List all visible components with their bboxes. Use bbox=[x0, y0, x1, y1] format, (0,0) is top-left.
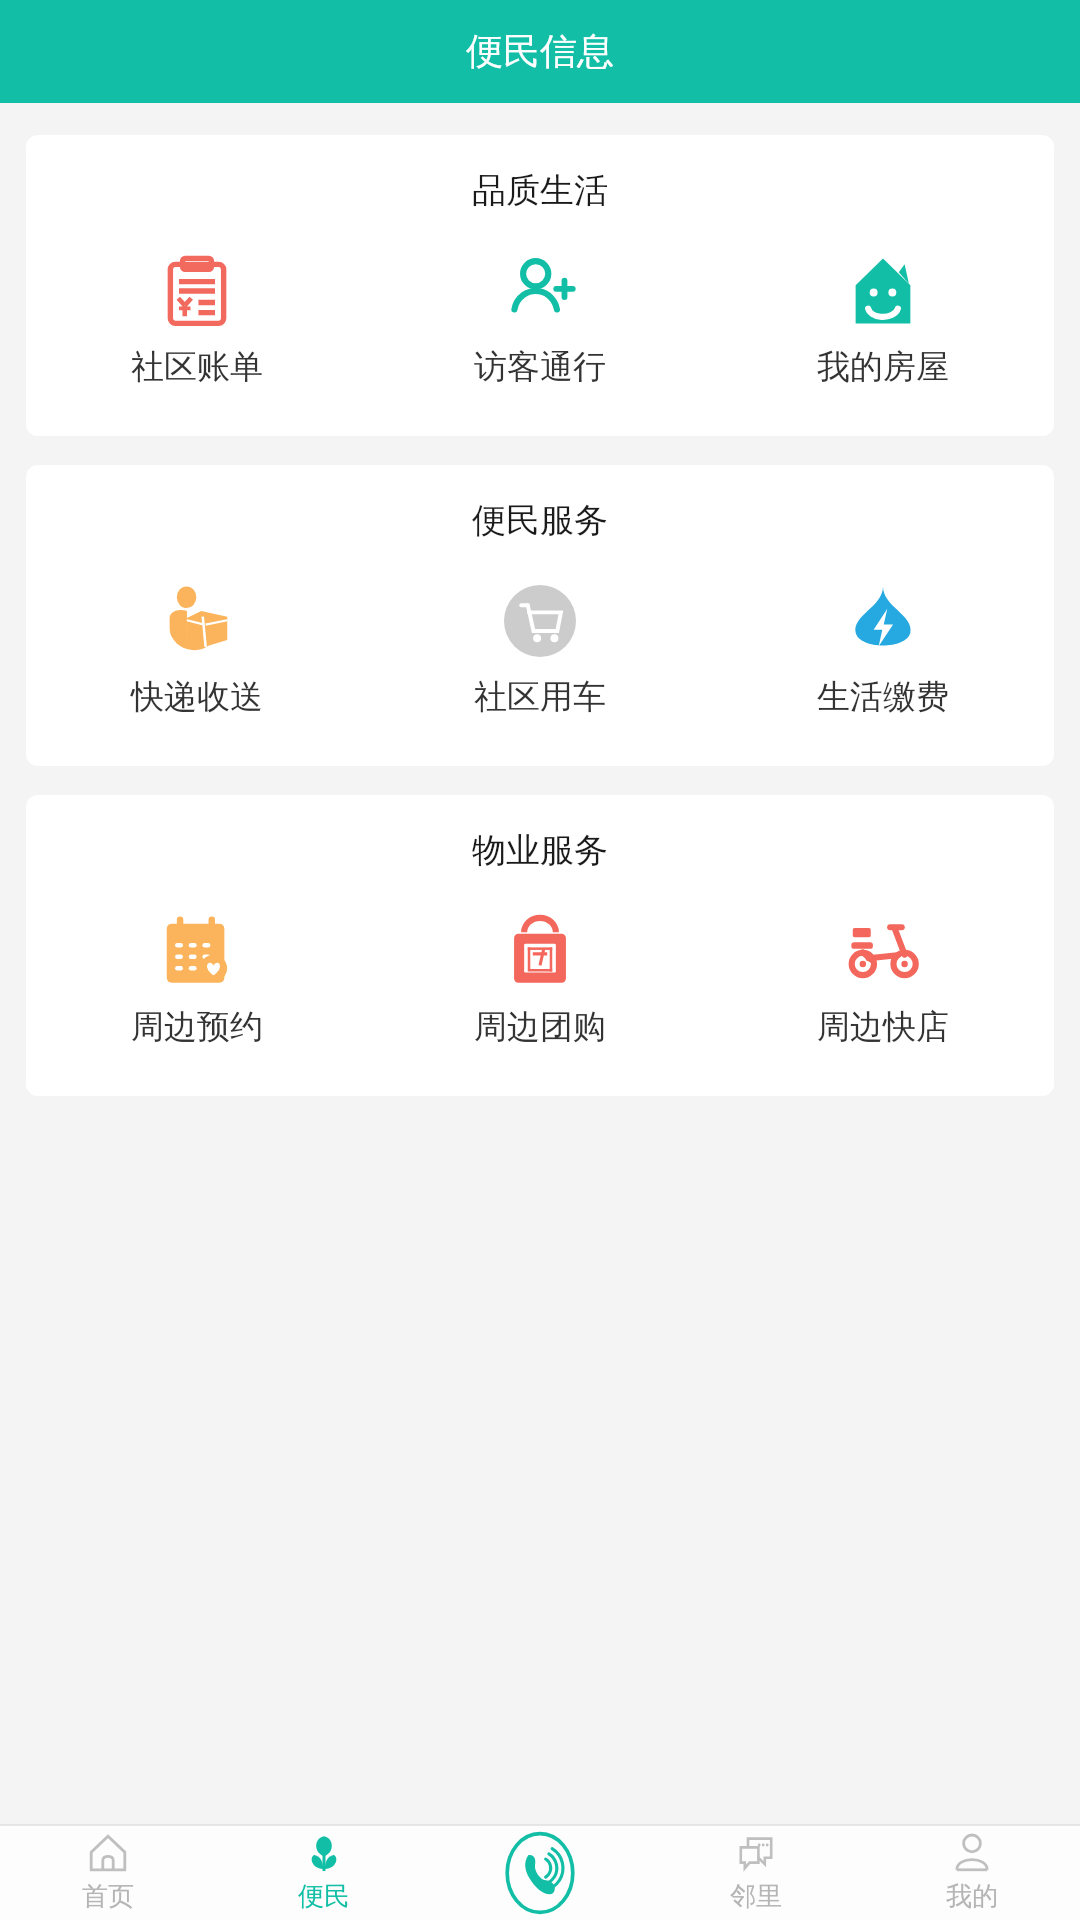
staticText: 我的 bbox=[946, 1880, 998, 1913]
staticText: 社区用车 bbox=[474, 676, 606, 718]
button[interactable]: 我的房屋 bbox=[711, 248, 1054, 392]
staticText: 首页 bbox=[82, 1880, 134, 1913]
staticText: 周边团购 bbox=[474, 1006, 606, 1048]
staticText: 便民服务 bbox=[472, 499, 608, 542]
button[interactable]: 生活缴费 bbox=[711, 578, 1054, 722]
button[interactable]: 邻里 bbox=[648, 1825, 864, 1920]
button[interactable]: 社区账单 bbox=[26, 248, 368, 392]
button[interactable]: 周边预约 bbox=[26, 908, 368, 1052]
button[interactable]: 我的 bbox=[864, 1825, 1080, 1920]
button[interactable]: Call bbox=[499, 1832, 581, 1914]
staticText: 便民信息 bbox=[466, 28, 614, 75]
button[interactable]: 首页 bbox=[0, 1825, 216, 1920]
button[interactable]: 便民 bbox=[216, 1825, 432, 1920]
staticText: 社区账单 bbox=[131, 346, 263, 388]
staticText: 品质生活 bbox=[472, 169, 608, 212]
staticText: 访客通行 bbox=[474, 346, 606, 388]
staticText: 便民 bbox=[298, 1880, 350, 1913]
button[interactable]: 周边团购 bbox=[368, 908, 711, 1052]
button[interactable]: 周边快店 bbox=[711, 908, 1054, 1052]
staticText: 邻里 bbox=[730, 1880, 782, 1913]
staticText: 快递收送 bbox=[131, 676, 263, 718]
staticText: 周边快店 bbox=[817, 1006, 949, 1048]
staticText: 周边预约 bbox=[131, 1006, 263, 1048]
button[interactable]: 快递收送 bbox=[26, 578, 368, 722]
button[interactable]: 访客通行 bbox=[368, 248, 711, 392]
staticText: 我的房屋 bbox=[817, 346, 949, 388]
staticText: 物业服务 bbox=[472, 829, 608, 872]
staticText: 生活缴费 bbox=[817, 676, 949, 718]
button[interactable]: 社区用车 bbox=[368, 578, 711, 722]
